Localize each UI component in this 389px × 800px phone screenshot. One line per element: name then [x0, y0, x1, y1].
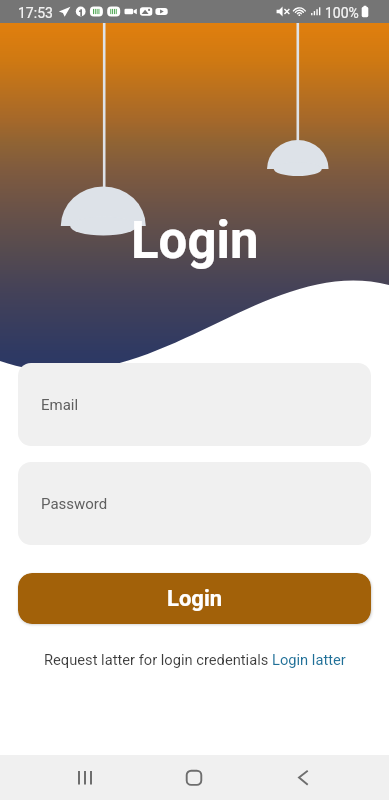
- button[interactable]: Back: [279, 755, 327, 800]
- staticText: Login latter: [272, 651, 346, 668]
- staticText: 17:53: [18, 5, 53, 21]
- button[interactable]: Login: [18, 573, 371, 624]
- staticText: 100%: [325, 5, 359, 21]
- staticText: Login: [167, 586, 223, 612]
- button[interactable]: Home: [170, 755, 218, 800]
- button[interactable]: Login latter: [272, 651, 346, 668]
- staticText: Request latter for login credentials: [44, 651, 272, 668]
- staticText: Password: [41, 495, 108, 513]
- button[interactable]: Recent apps: [61, 755, 109, 800]
- button[interactable]: Password: [18, 462, 371, 545]
- staticText: Login: [131, 211, 259, 271]
- button[interactable]: Email: [18, 363, 371, 446]
- staticText: Email: [41, 396, 79, 414]
